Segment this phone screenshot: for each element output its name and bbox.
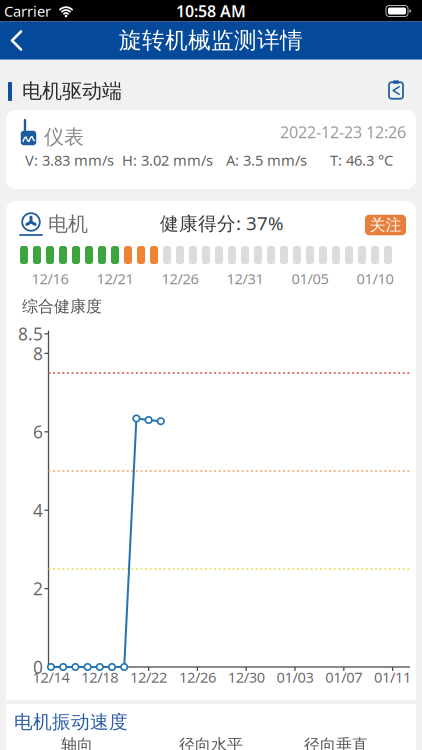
staticText: 4 [33, 499, 43, 522]
staticText: 径向垂直 [304, 735, 368, 750]
staticText: 12/22 [130, 667, 167, 687]
staticText: 径向水平 [179, 735, 243, 750]
staticText: 仪表 [44, 125, 84, 149]
staticText: Carrier [4, 1, 51, 21]
button[interactable]: 径向垂直 [291, 735, 381, 750]
staticText: 综合健康度 [22, 297, 102, 316]
staticText: V: 3.83 mm/s [25, 150, 114, 170]
staticText: 10:58 AM [176, 0, 246, 22]
staticText: 6 [33, 420, 43, 443]
button[interactable]: 轴向 [37, 735, 117, 750]
staticText: 12/26 [161, 269, 198, 288]
staticText: 0 [33, 655, 43, 678]
staticText: 12/26 [179, 667, 216, 687]
staticText: 12/16 [31, 269, 68, 288]
staticText: 12/31 [226, 269, 263, 288]
staticText: 电机 [48, 212, 88, 236]
staticText: 8.5 [18, 322, 43, 345]
staticText: 01/11 [374, 667, 411, 687]
staticText: 01/03 [276, 667, 313, 687]
button[interactable]: Back [0, 21, 34, 59]
staticText: 12/30 [228, 667, 265, 687]
staticText: 01/10 [356, 269, 393, 288]
staticText: 关注 [369, 215, 401, 235]
staticText: H: 3.02 mm/s [122, 150, 213, 170]
staticText: 健康得分: 37% [160, 211, 284, 235]
button[interactable]: 关注 [365, 215, 406, 235]
staticText: A: 3.5 mm/s [226, 150, 307, 170]
staticText: 电机振动速度 [14, 710, 128, 733]
staticText: 12/21 [96, 269, 133, 288]
button[interactable]: 分享 [387, 78, 405, 100]
staticText: 轴向 [61, 735, 93, 750]
staticText: 01/07 [325, 667, 362, 687]
staticText: 电机驱动端 [22, 79, 122, 103]
button[interactable]: 径向水平 [166, 735, 256, 750]
staticText: 01/05 [291, 269, 328, 288]
staticText: T: 46.3 °C [330, 150, 393, 170]
staticText: 2 [33, 577, 43, 600]
staticText: 旋转机械监测详情 [119, 27, 303, 54]
staticText: 12/18 [81, 667, 118, 687]
staticText: 8 [33, 342, 43, 365]
staticText: 2022-12-23 12:26 [280, 121, 406, 143]
staticText: 12/14 [32, 667, 69, 687]
